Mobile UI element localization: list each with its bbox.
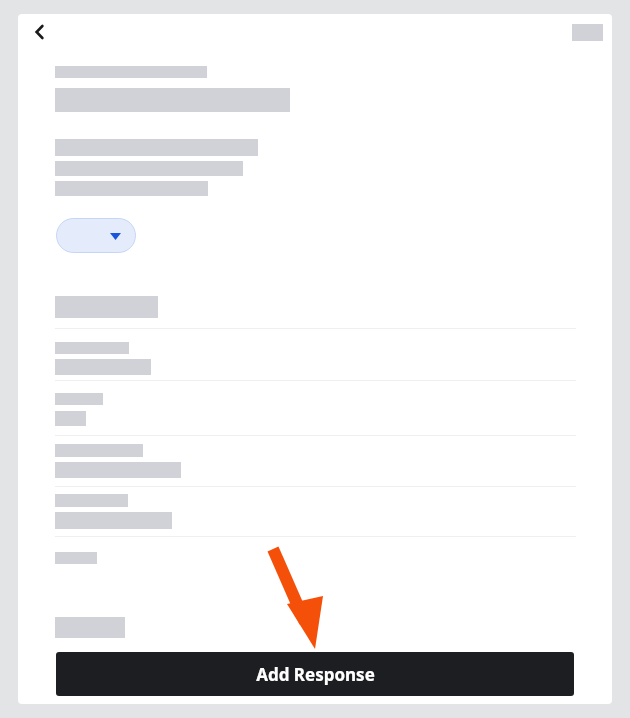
- button[interactable]: Dropdown: [56, 218, 136, 253]
- button[interactable]: Add Response: [56, 652, 574, 696]
- button[interactable]: Back: [22, 14, 58, 50]
- staticText: Add Response: [256, 663, 375, 686]
